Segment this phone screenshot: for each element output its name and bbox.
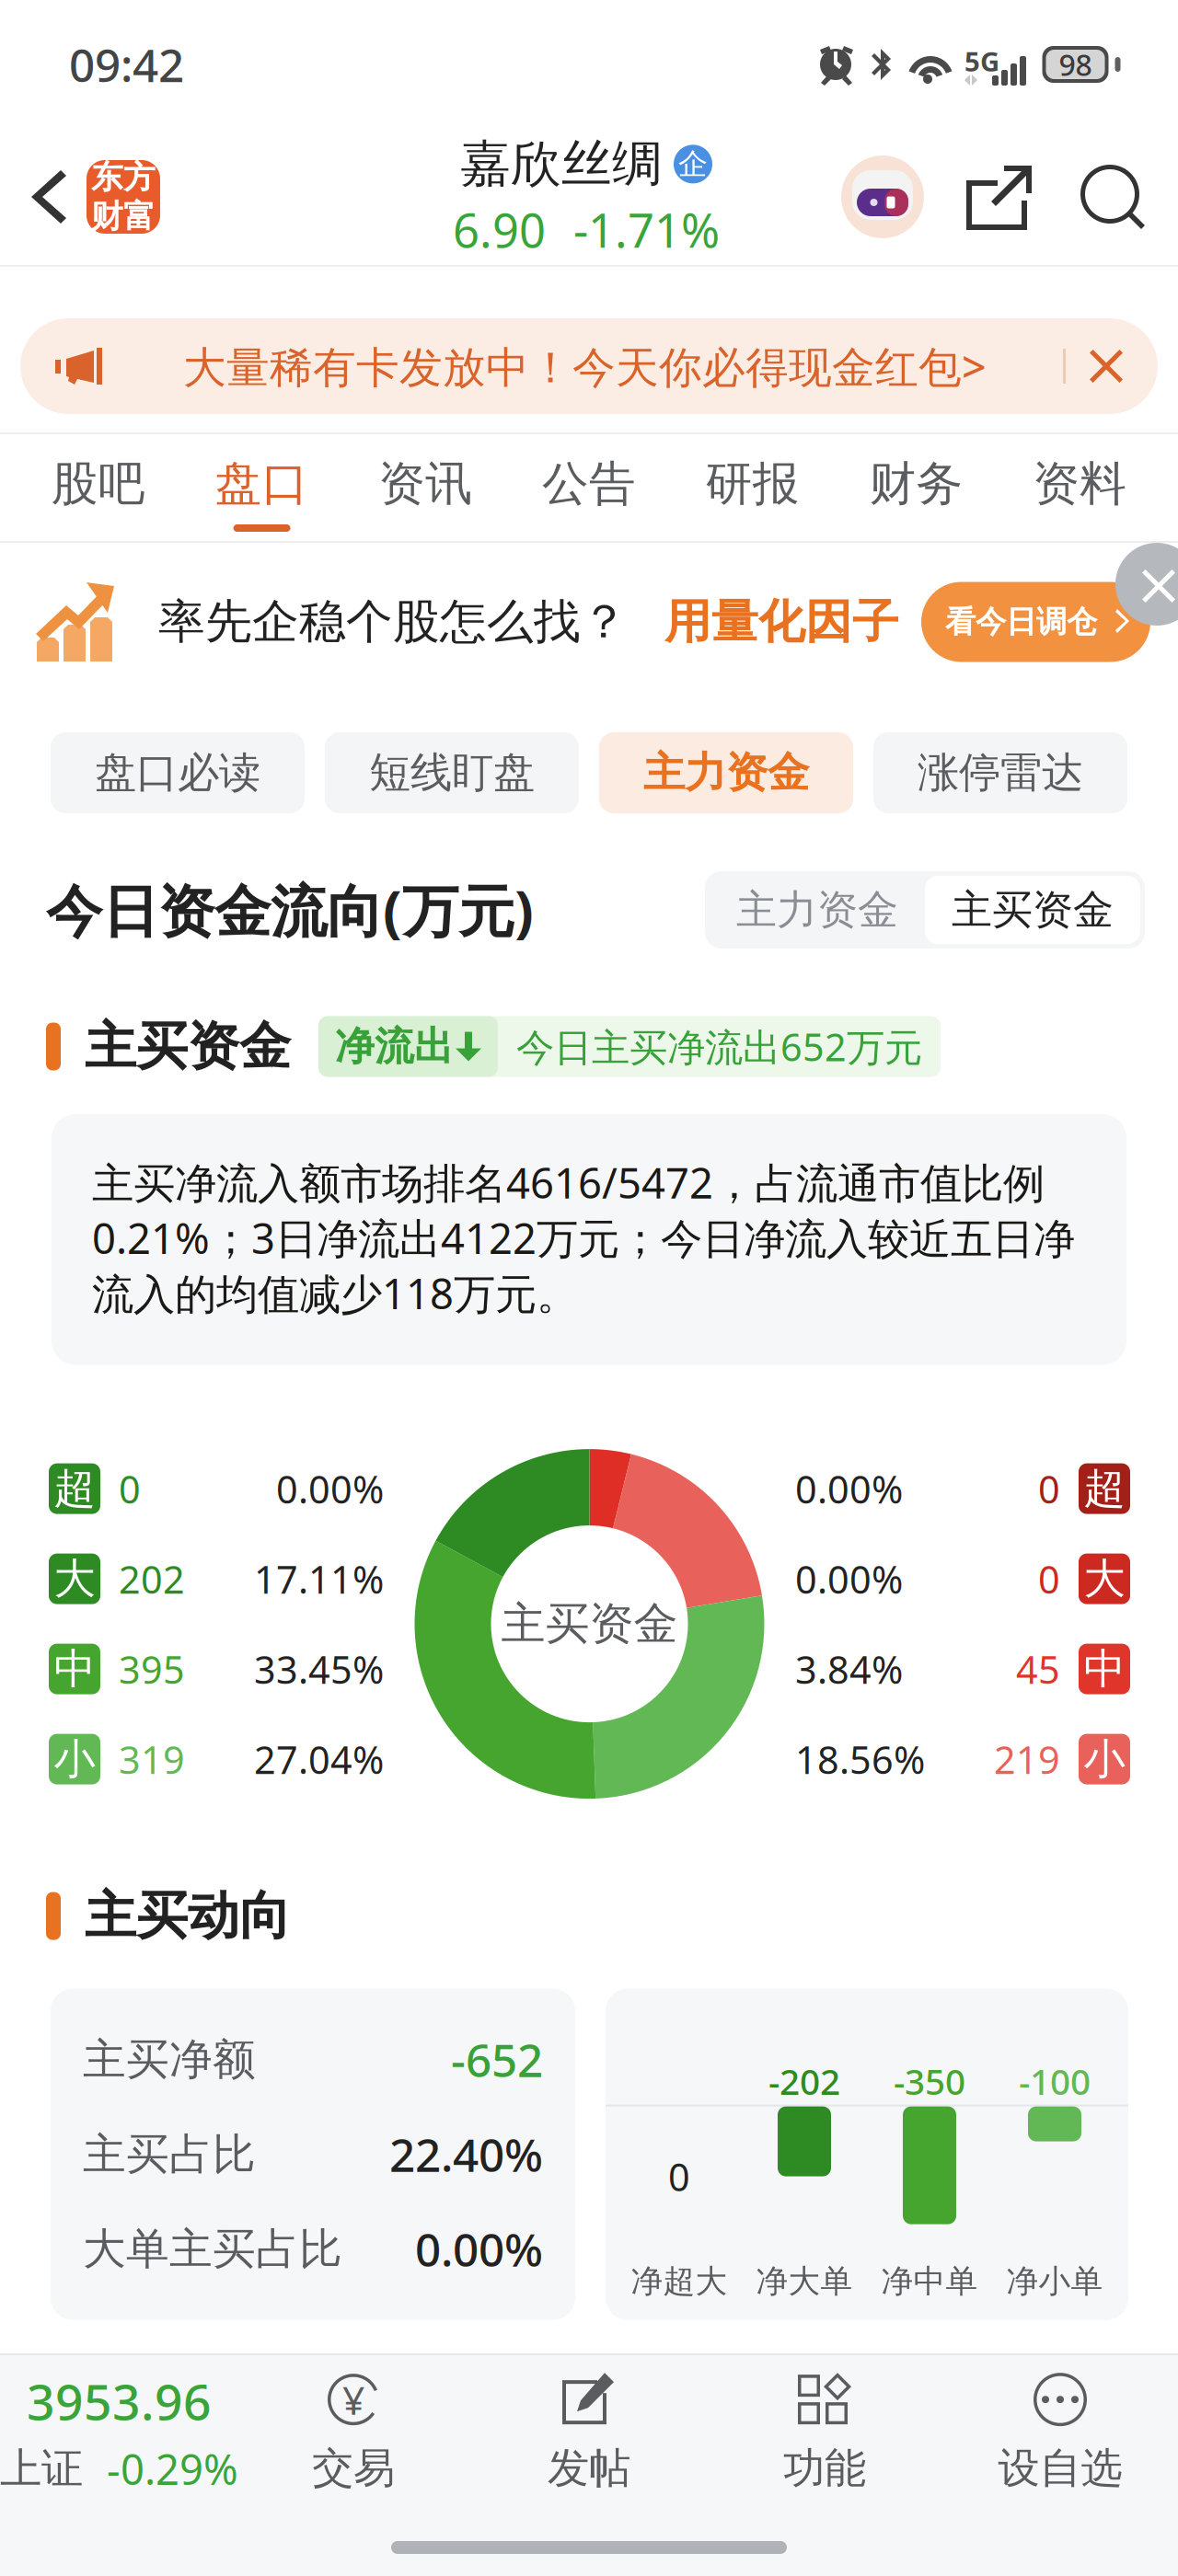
- staticText: 超: [54, 1463, 95, 1514]
- staticText: 98: [1059, 45, 1092, 84]
- button[interactable]: 发帖: [471, 2355, 707, 2510]
- staticText: 18.56%: [795, 1734, 925, 1784]
- button[interactable]: 主买资金: [925, 876, 1140, 944]
- staticText: 0: [668, 2151, 690, 2202]
- staticText: 319: [119, 1734, 185, 1784]
- staticText: 企: [678, 146, 708, 182]
- staticText: 0: [1038, 1554, 1060, 1604]
- button[interactable]: East Money: [87, 160, 160, 234]
- button[interactable]: Assistant: [841, 155, 966, 238]
- staticText: 交易: [312, 2443, 395, 2494]
- staticText: 嘉欣丝绸: [460, 133, 663, 195]
- staticText: 资讯: [379, 455, 472, 512]
- staticText: 率先企稳个股怎么找？: [158, 593, 628, 651]
- staticText: 短线盯盘: [369, 747, 535, 798]
- staticText: 主买资金: [501, 1597, 678, 1651]
- staticText: 主买净流入额市场排名4616/5472，占流通市值比例0.21%；3日净流出41…: [92, 1155, 1075, 1321]
- staticText: 净流出: [335, 1022, 454, 1071]
- staticText: 研报: [706, 455, 799, 512]
- staticText: 大: [54, 1553, 95, 1604]
- staticText: 3953.96: [27, 2369, 212, 2434]
- staticText: 主买资金: [85, 1015, 291, 1078]
- staticText: 33.45%: [254, 1644, 384, 1694]
- staticText: 0: [119, 1463, 141, 1514]
- button[interactable]: 主力资金: [710, 876, 925, 944]
- staticText: 主力资金: [736, 885, 898, 935]
- button[interactable]: 功能: [707, 2355, 942, 2510]
- staticText: 6.90: [453, 199, 546, 261]
- staticText: 净小单: [1006, 2262, 1103, 2301]
- staticText: 小: [1084, 1734, 1125, 1785]
- staticText: 主买动向: [85, 1884, 291, 1948]
- staticText: 设自选: [998, 2443, 1122, 2494]
- staticText: 小: [54, 1734, 95, 1785]
- staticText: 45: [1016, 1644, 1060, 1694]
- button[interactable]: 率先企稳个股怎么找？: [0, 533, 1150, 691]
- button[interactable]: 大量稀有卡发放中！今天你必得现金红包>: [0, 267, 1178, 432]
- staticText: 东方: [91, 158, 156, 197]
- staticText: 0: [1038, 1463, 1060, 1514]
- button[interactable]: 资料: [998, 434, 1161, 541]
- staticText: ¥: [342, 2373, 364, 2426]
- staticText: 净中单: [881, 2262, 978, 2301]
- staticText: 5G: [964, 43, 999, 79]
- staticText: 大单主买占比: [83, 2223, 342, 2275]
- button[interactable]: 设自选: [942, 2355, 1178, 2510]
- staticText: 净大单: [756, 2262, 853, 2301]
- staticText: 用量化因子: [664, 593, 899, 651]
- staticText: 3.84%: [795, 1644, 903, 1694]
- button[interactable]: Search: [1080, 129, 1178, 265]
- staticText: 上证: [0, 2443, 83, 2494]
- staticText: -350: [894, 2057, 965, 2105]
- staticText: 22.40%: [389, 2124, 543, 2184]
- staticText: 中: [1084, 1643, 1125, 1695]
- staticText: 资料: [1033, 455, 1127, 512]
- staticText: 大: [1084, 1553, 1125, 1604]
- staticText: 主买净额: [83, 2033, 256, 2086]
- staticText: 盘口必读: [95, 747, 260, 798]
- button[interactable]: 资讯: [344, 434, 507, 541]
- button[interactable]: 短线盯盘: [325, 732, 579, 813]
- button[interactable]: 盘口必读: [51, 732, 305, 813]
- staticText: 09:42: [69, 34, 184, 94]
- staticText: 395: [119, 1644, 185, 1694]
- staticText: 主力资金: [643, 747, 809, 798]
- button[interactable]: 公告: [507, 434, 671, 541]
- button[interactable]: 研报: [671, 434, 834, 541]
- staticText: 看今日调仓: [945, 603, 1097, 641]
- staticText: 主买占比: [83, 2128, 256, 2181]
- button[interactable]: 3953.96: [0, 2355, 236, 2510]
- staticText: 财富: [91, 197, 156, 236]
- staticText: 0.00%: [415, 2219, 543, 2279]
- staticText: 27.04%: [254, 1734, 384, 1784]
- staticText: -0.29%: [107, 2441, 238, 2496]
- button[interactable]: Back: [0, 129, 87, 265]
- staticText: 涨停雷达: [918, 747, 1083, 798]
- staticText: 财务: [869, 455, 963, 512]
- staticText: 202: [119, 1554, 185, 1604]
- staticText: 功能: [783, 2443, 866, 2494]
- staticText: 发帖: [548, 2443, 630, 2494]
- staticText: 盘口: [215, 455, 309, 512]
- staticText: 0.00%: [276, 1463, 384, 1514]
- button[interactable]: 涨停雷达: [873, 732, 1127, 813]
- staticText: -1.71%: [573, 199, 720, 261]
- button[interactable]: 盘口: [180, 434, 344, 541]
- staticText: 219: [994, 1734, 1060, 1784]
- staticText: 今日主买净流出652万元: [516, 1021, 922, 1072]
- staticText: 净超大: [631, 2262, 728, 2301]
- staticText: -652: [451, 2029, 543, 2090]
- staticText: 超: [1084, 1463, 1125, 1514]
- button[interactable]: Search share: [966, 129, 1080, 265]
- staticText: 公告: [542, 455, 636, 512]
- button[interactable]: 股吧: [17, 434, 180, 541]
- staticText: 今日资金流向(万元): [46, 872, 534, 947]
- button[interactable]: 财务: [834, 434, 998, 541]
- staticText: 大量稀有卡发放中！今天你必得现金红包>: [183, 338, 987, 395]
- staticText: 中: [54, 1643, 95, 1695]
- button[interactable]: ¥: [236, 2355, 471, 2510]
- staticText: 0.00%: [795, 1554, 903, 1604]
- button[interactable]: Close ad: [1115, 543, 1178, 626]
- button[interactable]: 主力资金: [599, 732, 853, 813]
- staticText: 股吧: [51, 455, 145, 512]
